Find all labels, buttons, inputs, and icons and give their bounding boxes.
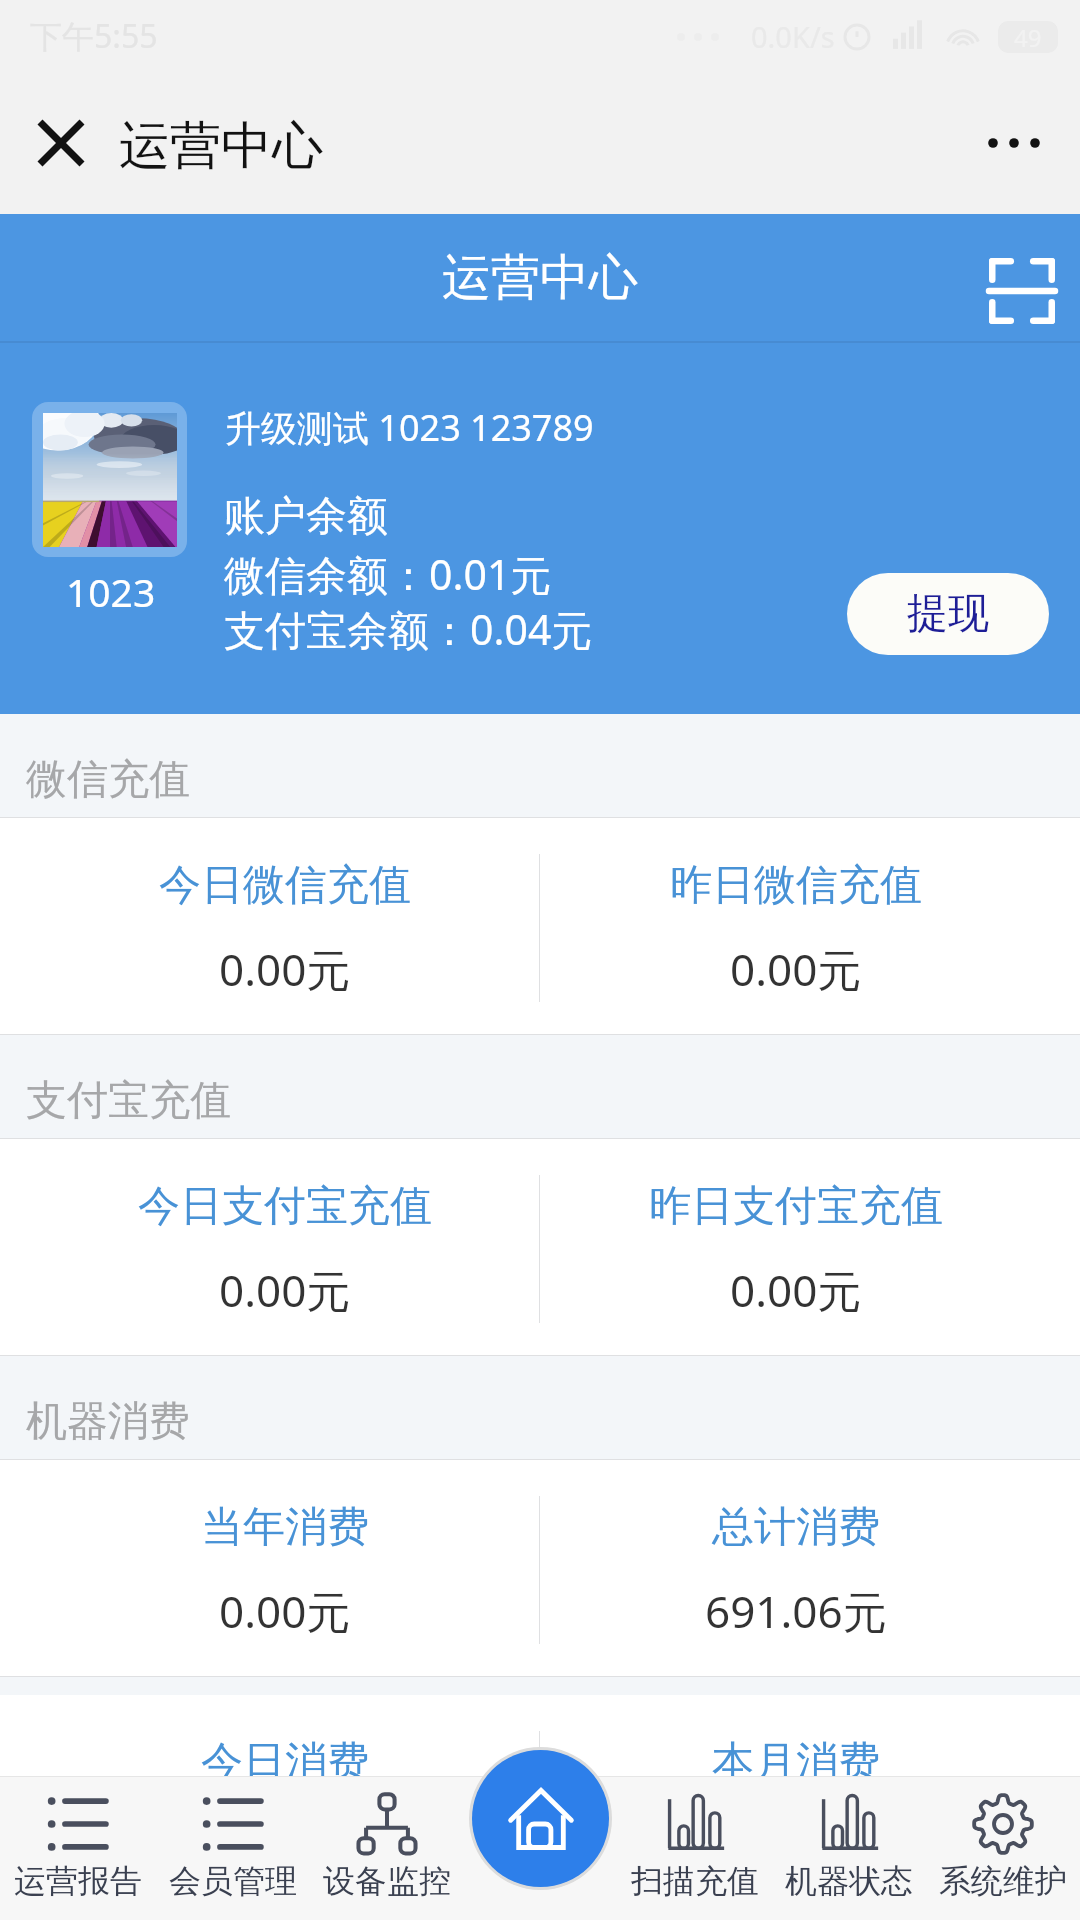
staticText: 支付宝充值 bbox=[26, 1075, 231, 1127]
staticText: 账户余额 bbox=[224, 491, 388, 543]
button[interactable]: More options bbox=[972, 101, 1056, 185]
staticText: 今日微信充值 bbox=[159, 859, 411, 912]
button[interactable]: Close bbox=[20, 102, 102, 184]
staticText: 1023 bbox=[66, 565, 156, 618]
button[interactable]: 本月消费 bbox=[540, 1695, 1051, 1912]
staticText: 今日支付宝充值 bbox=[138, 1180, 432, 1233]
button[interactable]: Scan QR code bbox=[977, 246, 1067, 336]
staticText: 0.00元 bbox=[730, 939, 862, 999]
button[interactable]: 今日消费 bbox=[29, 1695, 540, 1912]
staticText: 691.06元 bbox=[705, 1581, 887, 1641]
button[interactable]: 总计消费 bbox=[540, 1460, 1051, 1677]
staticText: 支付宝余额：0.04元 bbox=[224, 601, 593, 657]
staticText: 本月消费 bbox=[712, 1736, 880, 1789]
staticText: 当年消费 bbox=[201, 1501, 369, 1554]
staticText: 升级测试 1023 123789 bbox=[225, 403, 594, 452]
button[interactable]: 设备监控 bbox=[310, 1776, 464, 1920]
staticText: 今日消费 bbox=[201, 1736, 369, 1789]
staticText: 0.00元 bbox=[219, 1581, 351, 1641]
staticText: 微信充值 bbox=[26, 754, 190, 806]
staticText: 提现 bbox=[907, 588, 989, 640]
button[interactable]: 昨日微信充值 bbox=[540, 818, 1051, 1035]
staticText: 机器状态 bbox=[785, 1861, 913, 1901]
staticText: 运营中心 bbox=[442, 247, 638, 309]
button[interactable]: 扫描充值 bbox=[618, 1776, 772, 1920]
staticText: 0.00元 bbox=[219, 1260, 351, 1320]
staticText: 0.00元 bbox=[730, 1816, 862, 1876]
staticText: 总计消费 bbox=[712, 1501, 880, 1554]
staticText: 0.00元 bbox=[219, 1816, 351, 1876]
staticText: 设备监控 bbox=[323, 1861, 451, 1901]
staticText: 昨日微信充值 bbox=[670, 859, 922, 912]
button[interactable]: 机器状态 bbox=[772, 1776, 926, 1920]
staticText: 会员管理 bbox=[169, 1861, 297, 1901]
button[interactable]: 系统维护 bbox=[926, 1776, 1080, 1920]
button[interactable]: 运营报告 bbox=[0, 1776, 155, 1920]
staticText: 系统维护 bbox=[939, 1861, 1067, 1901]
button[interactable]: 当年消费 bbox=[29, 1460, 540, 1677]
staticText: 0.0K/s bbox=[751, 17, 835, 56]
button[interactable]: 今日支付宝充值 bbox=[29, 1139, 540, 1356]
button[interactable]: 提现 bbox=[847, 573, 1049, 655]
staticText: 运营报告 bbox=[14, 1861, 142, 1901]
staticText: 扫描充值 bbox=[631, 1861, 759, 1901]
staticText: 昨日支付宝充值 bbox=[649, 1180, 943, 1233]
staticText: 0.00元 bbox=[730, 1260, 862, 1320]
button[interactable]: Home bbox=[472, 1750, 609, 1887]
staticText: 微信余额：0.01元 bbox=[224, 546, 552, 602]
staticText: 下午5:55 bbox=[30, 14, 158, 58]
button[interactable]: 会员管理 bbox=[155, 1776, 310, 1920]
button[interactable]: 今日微信充值 bbox=[29, 818, 540, 1035]
staticText: 0.00元 bbox=[219, 939, 351, 999]
staticText: 机器消费 bbox=[26, 1396, 190, 1448]
button[interactable]: 昨日支付宝充值 bbox=[540, 1139, 1051, 1356]
staticText: 运营中心 bbox=[119, 114, 323, 178]
